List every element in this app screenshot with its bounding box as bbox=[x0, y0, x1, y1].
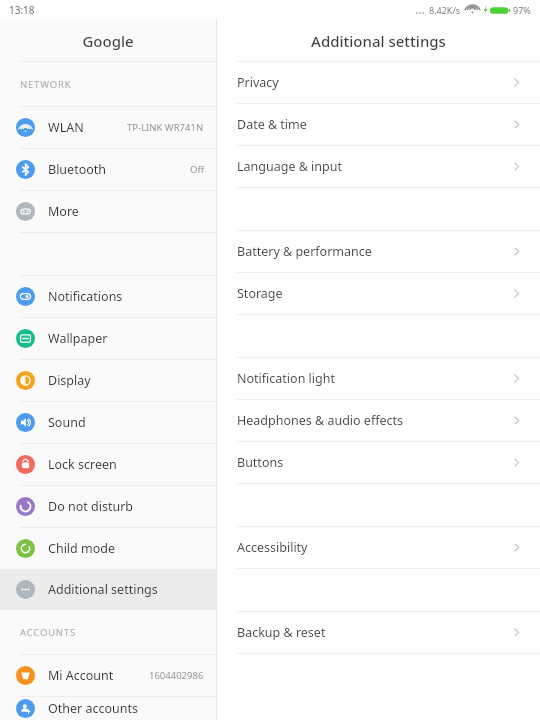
staticText: Notification light bbox=[237, 370, 511, 387]
staticText: Backup & reset bbox=[237, 624, 511, 641]
button[interactable]: Bluetooth bbox=[0, 149, 216, 190]
button[interactable]: Display bbox=[0, 360, 216, 401]
staticText: Additional settings bbox=[311, 31, 446, 51]
button[interactable]: Language & input bbox=[217, 146, 540, 187]
staticText: Mi Account bbox=[48, 667, 149, 684]
button[interactable]: WLAN bbox=[0, 107, 216, 148]
staticText: 8.42K/s bbox=[429, 4, 461, 16]
staticText: Off bbox=[190, 163, 204, 176]
button[interactable]: Other accounts bbox=[0, 697, 216, 720]
button[interactable]: Battery & performance bbox=[217, 231, 540, 272]
staticText: Do not disturb bbox=[48, 498, 204, 515]
staticText: Language & input bbox=[237, 158, 511, 175]
staticText: 1604402986 bbox=[149, 669, 204, 682]
staticText: Battery & performance bbox=[237, 243, 511, 260]
button[interactable]: More bbox=[0, 191, 216, 232]
staticText: Other accounts bbox=[48, 700, 204, 717]
button[interactable]: Lock screen bbox=[0, 444, 216, 485]
staticText: TP-LINK WR741N bbox=[127, 121, 204, 134]
button[interactable]: Privacy bbox=[217, 62, 540, 103]
staticText: NETWORK bbox=[20, 78, 72, 91]
staticText: Date & time bbox=[237, 116, 511, 133]
staticText: Buttons bbox=[237, 454, 511, 471]
staticText: 13:18 bbox=[9, 3, 35, 17]
button[interactable]: Date & time bbox=[217, 104, 540, 145]
staticText: Headphones & audio effects bbox=[237, 412, 511, 429]
button[interactable]: Buttons bbox=[217, 442, 540, 483]
staticText: Wallpaper bbox=[48, 330, 204, 347]
button[interactable]: Sound bbox=[0, 402, 216, 443]
button[interactable]: Storage bbox=[217, 273, 540, 314]
staticText: Display bbox=[48, 372, 204, 389]
staticText: More bbox=[48, 203, 204, 220]
button[interactable]: Mi Account bbox=[0, 655, 216, 696]
staticText: Google bbox=[82, 31, 134, 51]
button[interactable]: Wallpaper bbox=[0, 318, 216, 359]
staticText: Additional settings bbox=[48, 581, 204, 598]
staticText: Storage bbox=[237, 285, 511, 302]
button[interactable]: Do not disturb bbox=[0, 486, 216, 527]
staticText: Bluetooth bbox=[48, 161, 190, 178]
staticText: Child mode bbox=[48, 540, 204, 557]
button[interactable]: Notification light bbox=[217, 358, 540, 399]
button[interactable]: Accessibility bbox=[217, 527, 540, 568]
staticText: Sound bbox=[48, 414, 204, 431]
button[interactable]: Notifications bbox=[0, 276, 216, 317]
staticText: Privacy bbox=[237, 74, 511, 91]
button[interactable]: Additional settings bbox=[0, 569, 216, 610]
button[interactable]: Child mode bbox=[0, 528, 216, 569]
staticText: Lock screen bbox=[48, 456, 204, 473]
button[interactable]: Headphones & audio effects bbox=[217, 400, 540, 441]
button[interactable]: Backup & reset bbox=[217, 612, 540, 653]
staticText: 97% bbox=[513, 4, 531, 16]
staticText: WLAN bbox=[48, 119, 127, 136]
staticText: Notifications bbox=[48, 288, 204, 305]
staticText: ACCOUNTS bbox=[20, 626, 76, 639]
staticText: Accessibility bbox=[237, 539, 511, 556]
